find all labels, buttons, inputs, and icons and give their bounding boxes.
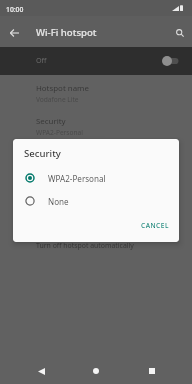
staticText: Turn off hotspot automatically: [36, 241, 134, 250]
button[interactable]: Home: [84, 359, 108, 383]
button[interactable]: Turn off hotspot automatically: [0, 240, 192, 255]
staticText: 10:00: [6, 5, 24, 14]
button[interactable]: CANCEL: [136, 218, 175, 233]
staticText: Security: [24, 147, 61, 160]
button[interactable]: Recent apps: [140, 359, 164, 383]
button[interactable]: Back: [29, 359, 53, 383]
button[interactable]: WPA2-Personal: [13, 166, 178, 190]
staticText: WPA2-Personal: [36, 128, 83, 137]
staticText: Security: [36, 116, 66, 127]
button[interactable]: Search: [171, 21, 189, 45]
staticText: Hotspot name: [36, 83, 89, 94]
button[interactable]: Back: [5, 21, 23, 45]
button[interactable]: Off: [0, 47, 192, 75]
staticText: WPA2-Personal: [48, 173, 106, 184]
button[interactable]: Security: [0, 115, 192, 142]
staticText: Off: [36, 55, 47, 65]
staticText: CANCEL: [141, 221, 170, 230]
staticText: Wi-Fi hotspot: [36, 26, 97, 39]
button[interactable]: None: [13, 189, 178, 213]
button[interactable]: Hotspot name: [0, 82, 192, 109]
staticText: Vodafone Lite: [36, 95, 79, 104]
staticText: None: [48, 196, 69, 207]
